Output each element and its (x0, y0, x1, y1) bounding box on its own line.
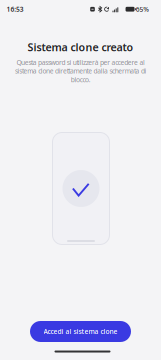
staticText: 16:53 (7, 5, 24, 14)
button[interactable]: Accedi al sistema clone (30, 321, 131, 342)
staticText: Accedi al sistema clone (43, 327, 117, 336)
staticText: 65% (136, 5, 149, 14)
staticText: Questa password si utilizzerà per accede… (15, 58, 146, 84)
staticText: Sistema clone creato (27, 40, 133, 54)
